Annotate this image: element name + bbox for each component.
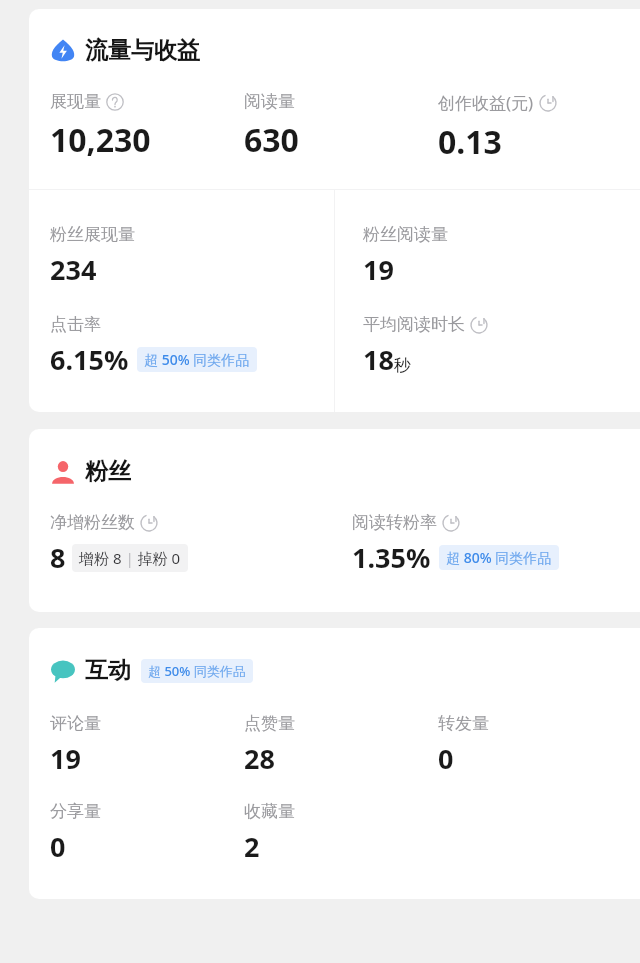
staticText: 0 (438, 740, 454, 777)
staticText: 流量与收益 (85, 36, 200, 65)
button[interactable]: 超 50% 同类作品 (141, 659, 253, 683)
staticText: 超 50% 同类作品 (144, 350, 250, 369)
staticText: 19 (50, 740, 81, 777)
staticText: 增粉 8 | 掉粉 0 (79, 548, 181, 568)
staticText: 分享量 (50, 801, 101, 822)
staticText: 234 (50, 251, 97, 288)
staticText: 创作收益(元) (438, 91, 534, 114)
staticText: 秒 (394, 355, 411, 376)
staticText: 转发量 (438, 713, 489, 734)
staticText: 8 (50, 539, 66, 576)
staticText: 630 (244, 118, 299, 162)
staticText: 点赞量 (244, 713, 295, 734)
staticText: 阅读量 (244, 91, 295, 112)
staticText: 评论量 (50, 713, 101, 734)
staticText: 超 80% 同类作品 (446, 548, 552, 567)
staticText: 1.35% (352, 539, 431, 576)
staticText: 互动 (85, 656, 131, 685)
staticText: 28 (244, 740, 275, 777)
staticText: 超 50% 同类作品 (148, 662, 246, 680)
staticText: 点击率 (50, 314, 101, 335)
staticText: 2 (244, 828, 260, 865)
staticText: 19 (363, 251, 394, 288)
staticText: 粉丝 (85, 457, 131, 486)
staticText: 10,230 (50, 118, 151, 162)
staticText: 0 (50, 828, 66, 865)
staticText: 收藏量 (244, 801, 295, 822)
staticText: 粉丝阅读量 (363, 224, 448, 245)
staticText: 6.15% (50, 341, 129, 378)
staticText: 阅读转粉率 (352, 512, 437, 533)
staticText: 18 (363, 341, 394, 378)
staticText: 净增粉丝数 (50, 512, 135, 533)
staticText: 0.13 (438, 120, 502, 164)
staticText: 展现量 (50, 91, 101, 112)
staticText: 平均阅读时长 (363, 314, 465, 335)
button[interactable]: 超 50% 同类作品 (137, 347, 257, 372)
staticText: 粉丝展现量 (50, 224, 135, 245)
button[interactable]: 增粉 8 | 掉粉 0 (72, 544, 188, 572)
button[interactable]: 超 80% 同类作品 (439, 545, 559, 570)
